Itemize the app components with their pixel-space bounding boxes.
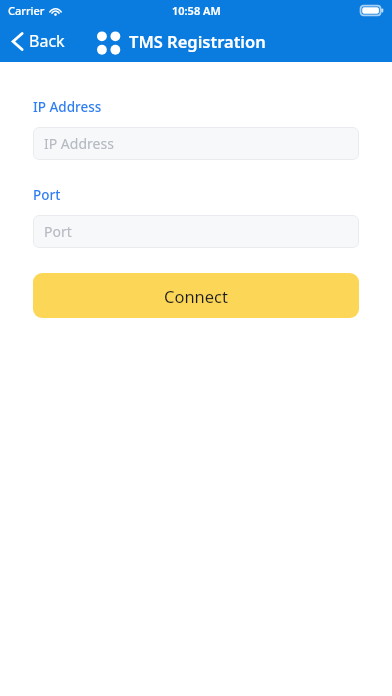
staticText: Port [33,186,61,204]
button[interactable]: Port [33,215,359,248]
staticText: Carrier [8,3,45,18]
button[interactable]: Connect [33,273,359,318]
other: App logo [97,29,121,53]
staticText: IP Address [33,98,102,116]
button[interactable]: IP Address [33,127,359,160]
staticText: Back [29,30,65,52]
button[interactable]: Back [0,26,73,56]
other: Back [12,32,23,51]
staticText: 10:58 AM [172,3,221,18]
staticText: Connect [164,285,228,307]
staticText: TMS Registration [129,30,266,52]
staticText: Port [44,222,72,241]
staticText: IP Address [44,134,114,153]
